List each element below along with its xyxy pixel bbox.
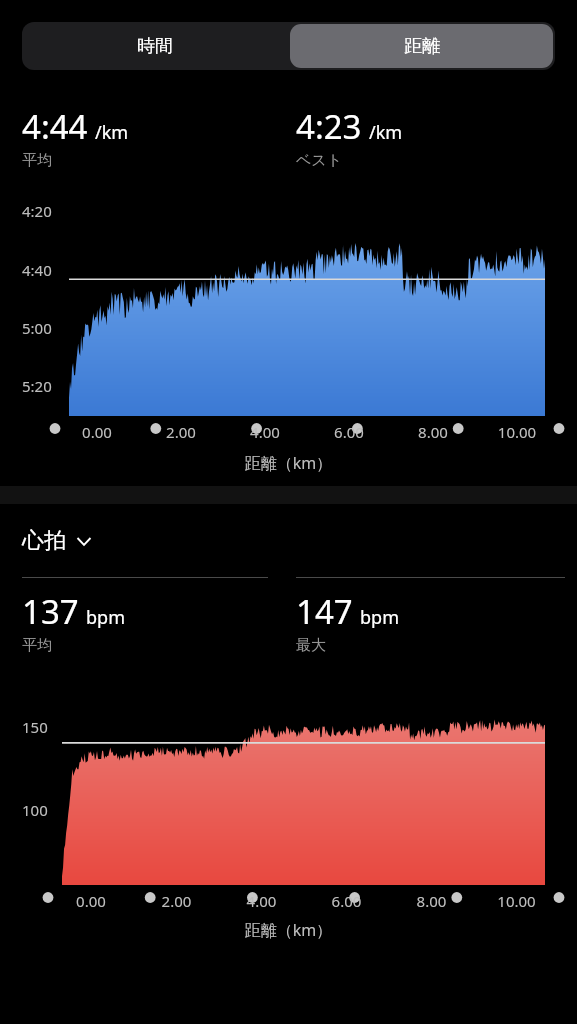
staticText: 2.00 (134, 891, 219, 911)
staticText: 最大 (296, 636, 326, 655)
staticText: bpm (360, 605, 399, 630)
staticText: 0.00 (55, 422, 139, 442)
staticText: 4.00 (223, 422, 307, 442)
staticText: 0.00 (48, 891, 134, 911)
staticText: 8.00 (391, 422, 475, 442)
staticText: 147 (296, 589, 353, 634)
staticText: 137 (22, 589, 79, 634)
staticText: 10.00 (474, 891, 559, 911)
staticText: 距離（km） (0, 452, 577, 474)
staticText: /km (369, 120, 403, 145)
staticText: bpm (86, 605, 125, 630)
staticText: 平均 (22, 151, 52, 170)
staticText: /km (95, 120, 129, 145)
other: Expand heart rate (74, 531, 94, 551)
staticText: 心拍 (22, 527, 66, 555)
staticText: 6.00 (304, 891, 389, 911)
staticText: 8.00 (389, 891, 474, 911)
staticText: ベスト (296, 151, 343, 170)
staticText: 100 (22, 800, 48, 820)
staticText: 4:40 (22, 260, 52, 280)
button[interactable]: 時間 (22, 22, 288, 70)
staticText: 距離（km） (0, 919, 577, 941)
staticText: 5:20 (22, 376, 52, 396)
button[interactable]: 距離 (290, 24, 553, 68)
staticText: 6.00 (307, 422, 391, 442)
staticText: 4.00 (219, 891, 304, 911)
staticText: 150 (22, 717, 48, 737)
staticText: 4:44 (22, 104, 88, 149)
staticText: 4:23 (296, 104, 362, 149)
button[interactable]: 心拍 (22, 527, 94, 555)
staticText: 距離 (404, 35, 440, 58)
staticText: 2.00 (139, 422, 223, 442)
staticText: 平均 (22, 636, 52, 655)
staticText: 5:00 (22, 318, 52, 338)
staticText: 4:20 (22, 201, 52, 221)
staticText: 時間 (137, 35, 173, 58)
staticText: 10.00 (475, 422, 559, 442)
